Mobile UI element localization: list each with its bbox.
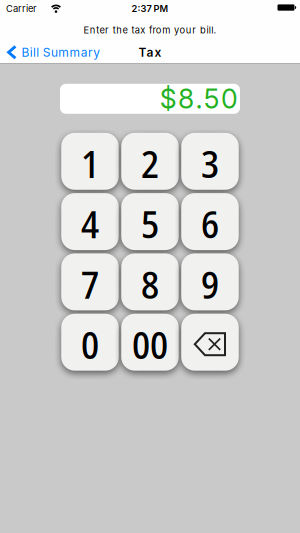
staticText: Enter the tax from your bill.	[83, 24, 217, 35]
button[interactable]: Bill Summary	[0, 45, 100, 60]
staticText: 4	[81, 198, 99, 249]
staticText: 1	[81, 137, 99, 189]
staticText: $8.50	[160, 83, 238, 115]
button[interactable]: Delete	[181, 314, 239, 371]
button[interactable]: 00	[121, 314, 179, 371]
button[interactable]: 1	[61, 133, 119, 190]
staticText: 7	[81, 258, 99, 310]
button[interactable]: 0	[61, 314, 119, 371]
staticText: Carrier	[6, 3, 37, 14]
staticText: 00	[132, 318, 168, 370]
staticText: 9	[201, 258, 219, 310]
button[interactable]: 7	[61, 253, 119, 310]
staticText: 5	[141, 198, 159, 249]
staticText: 0	[81, 318, 99, 370]
staticText: 8	[141, 258, 159, 310]
button[interactable]: 4	[61, 193, 119, 250]
staticText: Bill Summary	[21, 45, 100, 59]
button[interactable]: 6	[181, 193, 239, 250]
button[interactable]: 5	[121, 193, 179, 250]
staticText: 2	[141, 137, 159, 189]
button[interactable]: 2	[121, 133, 179, 190]
button[interactable]: 8	[121, 253, 179, 310]
button[interactable]: 9	[181, 253, 239, 310]
staticText: Tax	[138, 45, 161, 60]
staticText: 2:37 PM	[131, 3, 168, 14]
button[interactable]: 3	[181, 133, 239, 190]
staticText: 6	[201, 198, 219, 249]
staticText: 3	[201, 137, 219, 189]
